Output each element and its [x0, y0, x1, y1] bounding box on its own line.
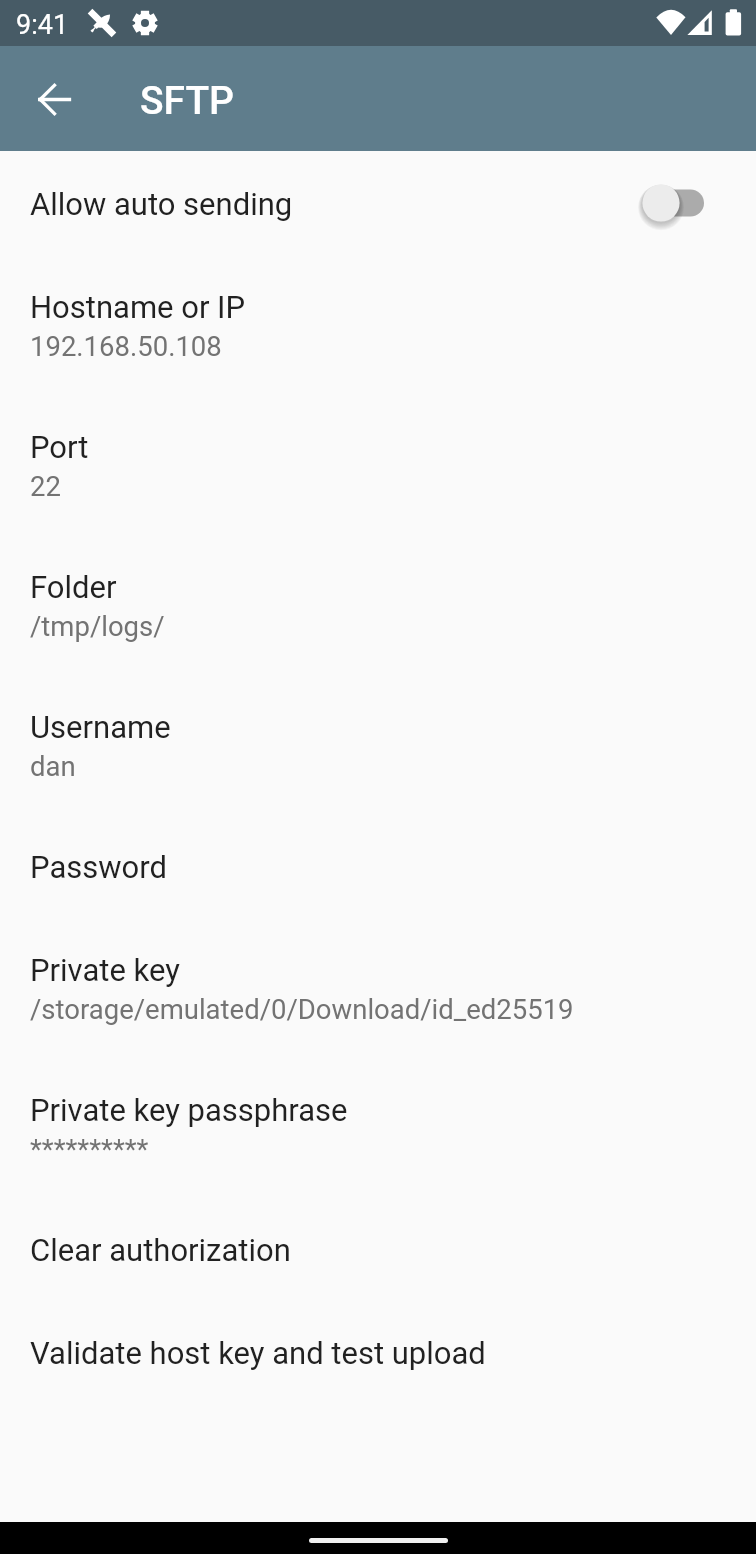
staticText: Validate host key and test upload: [30, 1335, 486, 1371]
staticText: /storage/emulated/0/Download/id_ed25519: [30, 993, 574, 1025]
button[interactable]: Folder: [0, 534, 756, 674]
staticText: Port: [30, 429, 89, 465]
staticText: Folder: [30, 569, 117, 605]
staticText: 22: [30, 470, 61, 502]
staticText: Hostname or IP: [30, 289, 246, 325]
button[interactable]: Allow auto sending: [0, 151, 756, 254]
staticText: Password: [30, 849, 167, 885]
staticText: 9:41: [16, 9, 69, 41]
staticText: **********: [30, 1133, 149, 1165]
staticText: /tmp/logs/: [30, 610, 165, 642]
staticText: SFTP: [140, 78, 235, 124]
staticText: dan: [30, 750, 76, 782]
staticText: Clear authorization: [30, 1232, 291, 1268]
button[interactable]: Hostname or IP: [0, 254, 756, 394]
button[interactable]: Username: [0, 674, 756, 814]
button[interactable]: Password: [0, 814, 756, 917]
button[interactable]: Private key passphrase: [0, 1057, 756, 1197]
button[interactable]: Validate host key and test upload: [0, 1300, 756, 1403]
button[interactable]: Back: [27, 72, 81, 126]
staticText: Allow auto sending: [30, 186, 293, 222]
staticText: Private key: [30, 952, 180, 988]
button[interactable]: Port: [0, 394, 756, 534]
staticText: Username: [30, 709, 171, 745]
button[interactable]: Private key: [0, 917, 756, 1057]
button[interactable]: Allow auto sending toggle, off: [630, 179, 704, 227]
button[interactable]: Clear authorization: [0, 1197, 756, 1300]
staticText: Private key passphrase: [30, 1092, 348, 1128]
other: Home: [309, 1538, 448, 1543]
staticText: 192.168.50.108: [30, 330, 222, 362]
